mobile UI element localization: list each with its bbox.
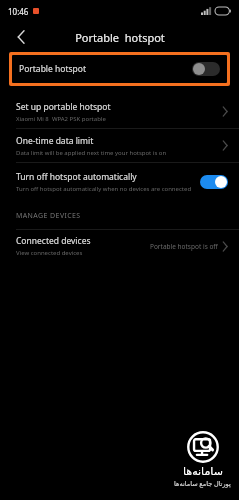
staticText: One-time data limit [16,135,94,147]
button[interactable]: Connected devices [0,230,239,262]
staticText: پورتال جامع سامانه‌ها [174,479,231,488]
button[interactable]: Portable hotspot [12,55,227,83]
staticText: MANAGE DEVICES [16,211,81,221]
button[interactable]: Portable hotspot toggle, off [192,62,220,76]
button[interactable]: One-time data limit [0,129,239,162]
staticText: View connected devices [16,249,83,257]
staticText: Portable hotspot is off [150,242,218,251]
staticText: Portable hotspot [19,63,87,75]
staticText: 10:46 [8,6,29,17]
button[interactable]: Set up portable hotspot [0,95,239,128]
staticText: Xiaomi Mi 8 WPA2 PSK portable [16,115,106,123]
staticText: Set up portable hotspot [16,101,111,113]
button[interactable]: Back [10,26,32,48]
staticText: Connected devices [16,235,91,247]
staticText: Turn off hotspot automatically when no d… [16,185,192,193]
staticText: Portable hotspot [75,30,165,45]
button[interactable]: Turn off hotspot automatically [0,163,239,201]
staticText: سامانه‌ها [183,465,223,478]
button[interactable]: Turn off hotspot automatically toggle, o… [200,175,228,189]
staticText: Data limit will be applied next time you… [16,149,167,157]
staticText: Turn off hotspot automatically [16,171,137,183]
